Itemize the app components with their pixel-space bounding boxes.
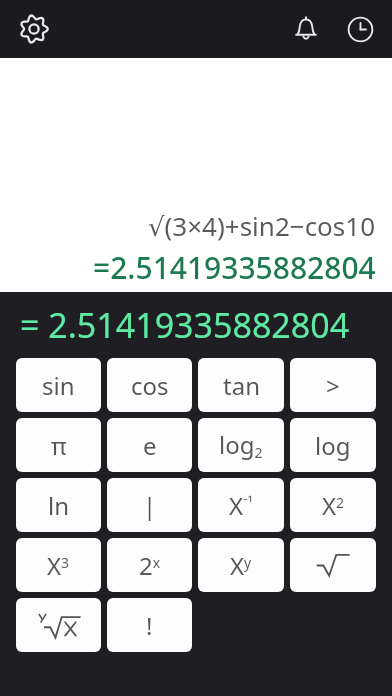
staticText: |	[143, 489, 157, 522]
staticText: X3	[47, 549, 70, 582]
button[interactable]: log2	[198, 418, 284, 472]
staticText: = 2.51419335882804	[20, 302, 350, 348]
staticText: π	[51, 429, 67, 462]
button[interactable]: Notifications	[284, 7, 328, 51]
button[interactable]	[16, 598, 101, 652]
button[interactable]: Settings	[12, 7, 56, 51]
staticText: Xy	[230, 549, 252, 582]
staticText: ln	[48, 489, 70, 522]
button[interactable]: π	[16, 418, 101, 472]
staticText: >	[326, 369, 340, 402]
button[interactable]: ln	[16, 478, 101, 532]
staticText: e	[143, 429, 157, 462]
staticText: 2x	[139, 549, 161, 582]
button[interactable]: cos	[107, 358, 192, 412]
button[interactable]: log	[290, 418, 376, 472]
staticText: X⁻¹	[229, 489, 253, 522]
button[interactable]: >	[290, 358, 376, 412]
button[interactable]: X⁻¹	[198, 478, 284, 532]
staticText: log2	[219, 428, 263, 462]
button[interactable]: |	[107, 478, 192, 532]
staticText: =2.51419335882804	[93, 247, 376, 288]
button[interactable]: !	[107, 598, 192, 652]
button[interactable]: History	[338, 7, 382, 51]
button[interactable]: X3	[16, 538, 101, 592]
staticText: tan	[223, 369, 260, 402]
button[interactable]: tan	[198, 358, 284, 412]
button[interactable]: e	[107, 418, 192, 472]
button[interactable]: X2	[290, 478, 376, 532]
staticText: cos	[131, 369, 169, 402]
button[interactable]: sin	[16, 358, 101, 412]
staticText: sin	[42, 369, 75, 402]
staticText: √(3×4)+sin2−cos10	[148, 208, 376, 243]
staticText: !	[146, 609, 153, 642]
button[interactable]: 2x	[107, 538, 192, 592]
staticText: log	[315, 429, 351, 462]
button[interactable]: Xy	[198, 538, 284, 592]
staticText: X2	[322, 489, 345, 522]
button[interactable]	[290, 538, 376, 592]
